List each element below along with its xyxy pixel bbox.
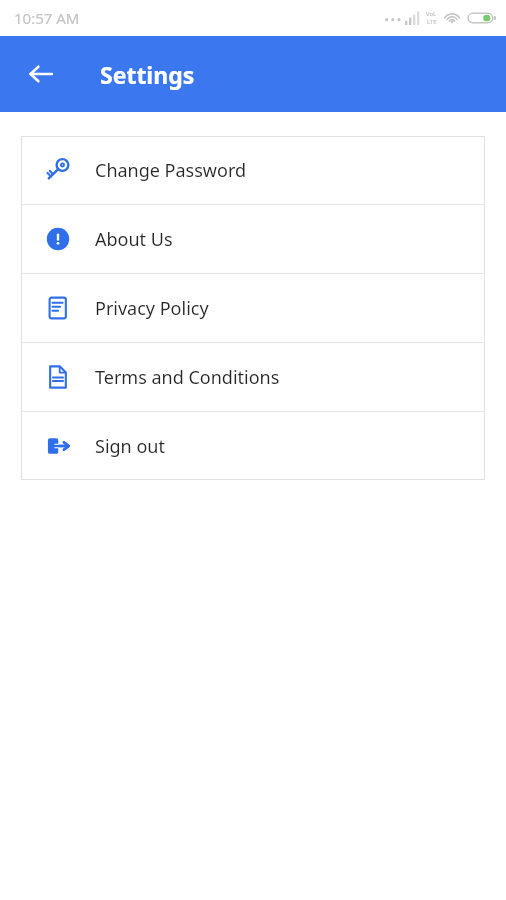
staticText: Terms and Conditions bbox=[95, 365, 280, 390]
button[interactable]: Terms and Conditions bbox=[21, 343, 485, 411]
button[interactable]: Privacy Policy bbox=[21, 274, 485, 342]
button[interactable]: Back bbox=[17, 50, 65, 98]
staticText: Privacy Policy bbox=[95, 296, 209, 321]
staticText: VoL bbox=[426, 10, 437, 18]
staticText: 10:57 AM bbox=[14, 8, 80, 28]
staticText: LTE bbox=[427, 18, 437, 26]
staticText: Settings bbox=[100, 59, 195, 90]
button[interactable]: Sign out bbox=[21, 412, 485, 480]
staticText: Sign out bbox=[95, 434, 165, 459]
button[interactable]: About Us bbox=[21, 205, 485, 273]
staticText: Change Password bbox=[95, 158, 247, 183]
button[interactable]: Change Password bbox=[21, 136, 485, 204]
staticText: About Us bbox=[95, 227, 173, 252]
